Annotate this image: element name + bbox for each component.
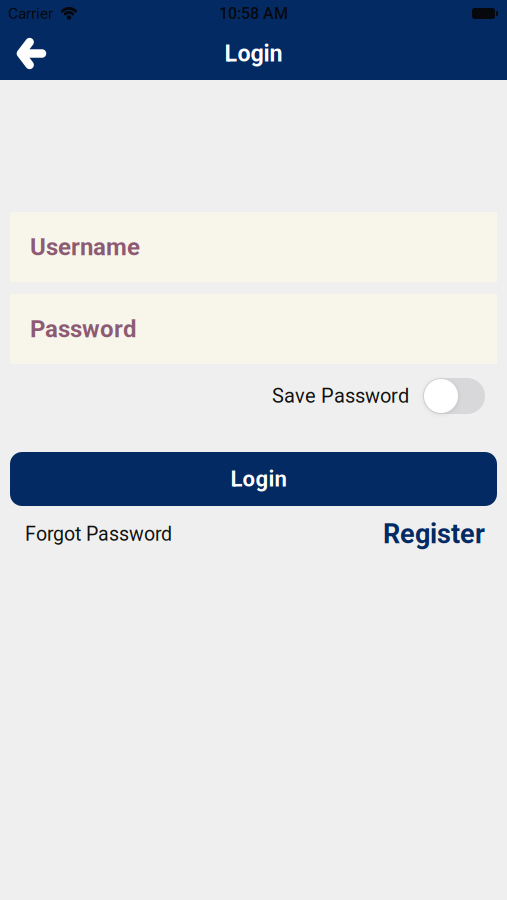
button[interactable]: Login [10,452,497,506]
button[interactable]: Password [10,294,497,364]
staticText: Login [224,40,282,67]
button[interactable]: Save Password [423,378,485,414]
staticText: Password [30,315,137,343]
button[interactable]: Forgot Password [25,522,172,545]
button[interactable]: Back [8,31,54,75]
staticText: 10:58 AM [219,4,288,23]
staticText: Register [383,518,485,550]
staticText: Save Password [272,384,409,408]
staticText: Carrier [8,4,53,23]
staticText: Username [30,233,140,261]
button[interactable]: Username [10,212,497,282]
staticText: Login [230,466,286,492]
button[interactable]: Register [383,518,485,550]
staticText: Forgot Password [25,522,172,545]
